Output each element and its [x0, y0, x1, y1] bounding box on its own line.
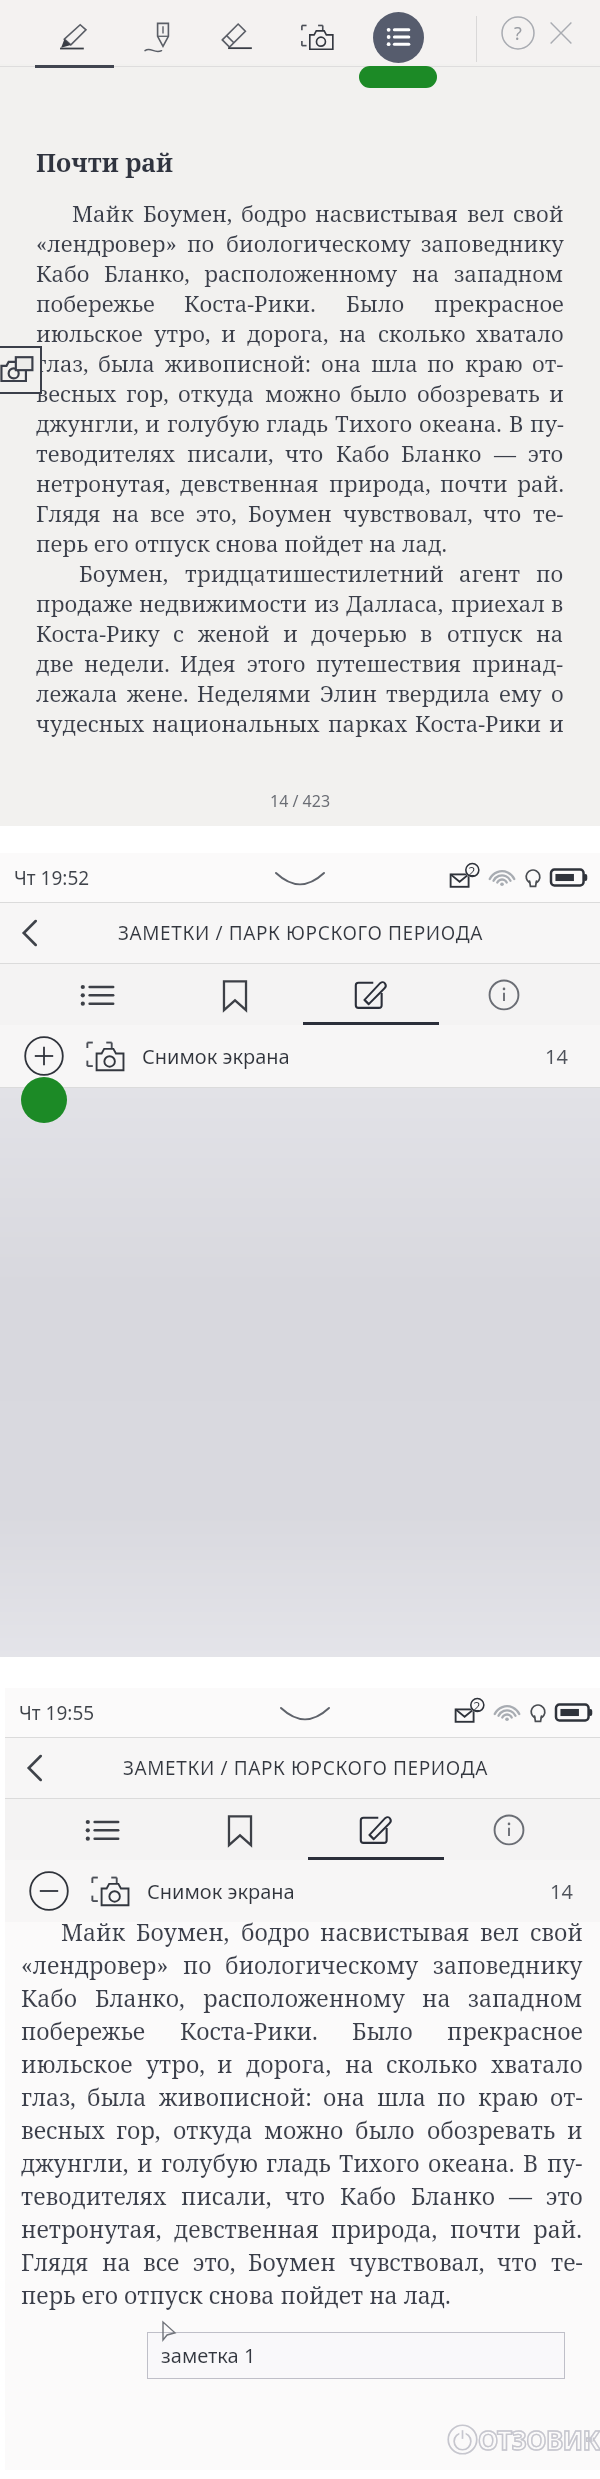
staticText: твердила: [386, 678, 491, 708]
staticText: дорога,: [246, 2048, 332, 2079]
staticText: Тихого: [339, 2147, 420, 2178]
button[interactable]: Notes: [303, 964, 439, 1025]
button[interactable]: Note list: [366, 5, 430, 69]
staticText: Коста-Рики: [415, 708, 542, 738]
staticText: чувствовал,: [343, 498, 473, 528]
staticText: почти: [450, 2213, 521, 2244]
staticText: 14: [550, 1878, 573, 1905]
staticText: на: [345, 2048, 374, 2079]
button[interactable]: Screenshot: [0, 346, 42, 394]
staticText: Боумен,: [79, 558, 169, 588]
staticText: Снимок экрана: [147, 1878, 295, 1905]
staticText: июльское: [36, 318, 143, 348]
button[interactable]: [5, 1860, 600, 1922]
button[interactable]: Notes: [308, 1799, 444, 1860]
staticText: океана.: [428, 2147, 515, 2178]
staticText: и: [221, 318, 236, 348]
staticText: Коста-Рику: [36, 618, 160, 648]
button[interactable]: Help: [490, 5, 546, 61]
button[interactable]: заметка 1: [147, 2332, 565, 2379]
button[interactable]: Bookmarks: [172, 1799, 308, 1860]
staticText: о: [551, 678, 564, 708]
staticText: ЗАМЕТКИ / ПАРК ЮРСКОГО ПЕРИОДА: [123, 1755, 488, 1781]
staticText: парках: [328, 708, 408, 738]
staticText: на: [536, 618, 564, 648]
staticText: гладь: [266, 408, 328, 438]
staticText: В: [509, 408, 524, 438]
staticText: Элин: [320, 678, 377, 708]
staticText: глаз,: [36, 348, 89, 378]
staticText: гор,: [116, 2114, 161, 2145]
button[interactable]: Back: [5, 1738, 65, 1798]
staticText: Идея: [180, 648, 236, 678]
staticText: живописной:: [159, 2081, 312, 2112]
staticText: теводителях: [36, 438, 175, 468]
staticText: на: [339, 318, 367, 348]
staticText: побережье: [36, 288, 155, 318]
staticText: приехал: [451, 588, 545, 618]
button[interactable]: Contents: [35, 1799, 171, 1860]
staticText: все: [150, 498, 185, 528]
staticText: теводителях: [21, 2180, 167, 2211]
button[interactable]: Highlighter: [41, 5, 105, 69]
staticText: на: [112, 498, 140, 528]
staticText: чувствовал,: [349, 2246, 485, 2277]
staticText: прекрасное: [434, 288, 564, 318]
staticText: свой: [513, 198, 564, 228]
button[interactable]: Pen: [131, 5, 195, 69]
staticText: биологическому: [226, 228, 411, 258]
staticText: можно: [265, 378, 341, 408]
button[interactable]: Back: [0, 903, 60, 963]
staticText: рай.: [517, 468, 564, 498]
button[interactable]: [0, 1025, 600, 1087]
staticText: июльское: [21, 2048, 133, 2079]
staticText: ЗАМЕТКИ / ПАРК ЮРСКОГО ПЕРИОДА: [118, 920, 483, 946]
staticText: Кабо: [36, 258, 90, 288]
staticText: «лендровер»: [21, 1949, 169, 1980]
staticText: агент: [459, 558, 521, 588]
staticText: те-: [551, 2246, 583, 2277]
staticText: «лендровер»: [36, 228, 177, 258]
staticText: природа,: [331, 2213, 438, 2244]
staticText: недвижимости: [139, 588, 307, 618]
staticText: отпуск: [447, 618, 523, 648]
staticText: биологическому: [225, 1949, 419, 1980]
staticText: было: [355, 2114, 415, 2145]
staticText: Снимок экрана: [142, 1043, 290, 1070]
staticText: Бланко: [401, 438, 482, 468]
button[interactable]: Eraser: [204, 5, 268, 69]
staticText: Глядя: [21, 2246, 89, 2277]
staticText: это,: [196, 498, 237, 528]
staticText: сколько: [386, 2048, 478, 2079]
staticText: голубую: [167, 408, 260, 438]
staticText: дочерью: [311, 618, 407, 648]
staticText: те-: [533, 498, 564, 528]
staticText: она: [321, 348, 361, 378]
staticText: Боумен: [248, 498, 332, 528]
button[interactable]: Info: [441, 1799, 577, 1860]
button[interactable]: Bookmarks: [167, 964, 303, 1025]
button[interactable]: Info: [436, 964, 572, 1025]
staticText: с: [173, 618, 184, 648]
staticText: Далласа,: [346, 588, 444, 618]
staticText: Кабо: [340, 2180, 397, 2211]
button[interactable]: Screenshot: [285, 5, 349, 69]
staticText: заповеднику: [433, 1949, 583, 1980]
staticText: Было: [346, 288, 405, 318]
staticText: —: [509, 2180, 532, 2211]
staticText: женой: [198, 618, 270, 648]
staticText: рай.: [533, 2213, 583, 2244]
button[interactable]: Contents: [30, 964, 166, 1025]
staticText: этого: [247, 648, 306, 678]
staticText: Бланко,: [95, 1982, 185, 2013]
staticText: —: [494, 438, 517, 468]
button[interactable]: Close: [533, 5, 589, 61]
staticText: писали,: [181, 2180, 272, 2211]
staticText: Майк: [72, 198, 134, 228]
staticText: национальных: [152, 708, 320, 738]
staticText: от-: [532, 348, 564, 378]
staticText: весных: [36, 378, 117, 408]
staticText: из: [314, 588, 340, 618]
staticText: краю: [465, 348, 523, 378]
staticText: 2: [468, 862, 476, 880]
